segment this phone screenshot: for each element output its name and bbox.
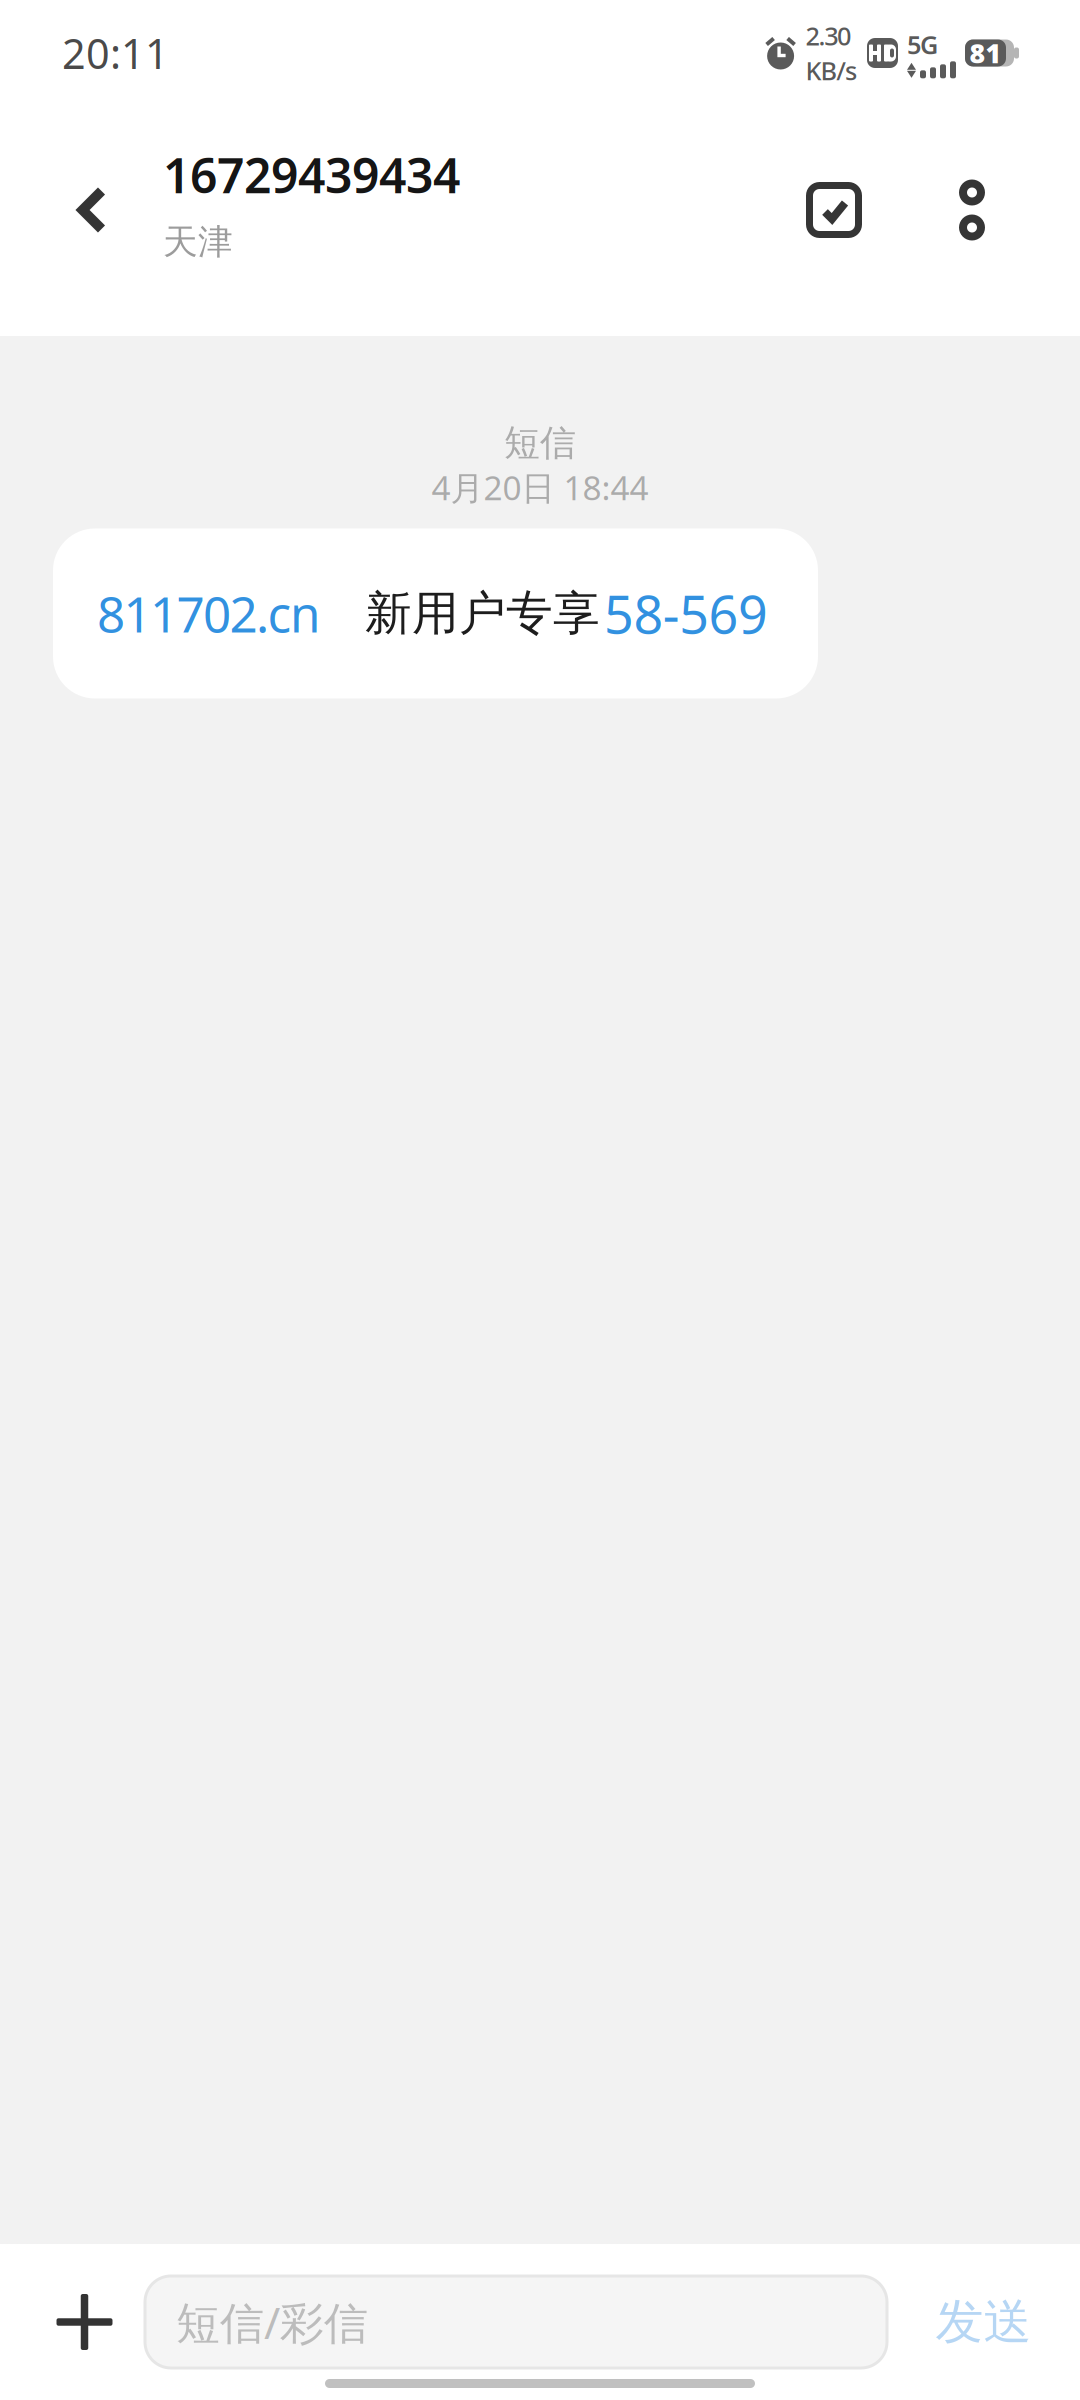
- staticText: KB/s: [806, 53, 857, 87]
- staticText: 16729439434: [163, 143, 460, 206]
- staticText: 811702.cn: [97, 581, 320, 646]
- staticText: 2.30: [806, 19, 851, 52]
- staticText: 发送: [935, 2292, 1031, 2351]
- staticText: 短信/彩信: [176, 2293, 368, 2351]
- button[interactable]: More options: [926, 126, 1080, 316]
- button[interactable]: 发送: [887, 2244, 1080, 2400]
- staticText: 5G: [907, 28, 938, 61]
- staticText: 20:11: [62, 26, 169, 80]
- staticText: 短信: [504, 421, 576, 465]
- staticText: 天津: [163, 221, 233, 263]
- button[interactable]: 短信/彩信: [145, 2276, 887, 2368]
- button[interactable]: Add attachment: [0, 2244, 145, 2400]
- staticText: 58-569: [604, 579, 768, 648]
- staticText: 4月20日 18:44: [431, 465, 648, 509]
- button[interactable]: Back: [0, 126, 160, 316]
- staticText: 81: [969, 35, 1001, 71]
- button[interactable]: Select messages: [728, 126, 926, 316]
- staticText: 新用户专享: [365, 585, 600, 642]
